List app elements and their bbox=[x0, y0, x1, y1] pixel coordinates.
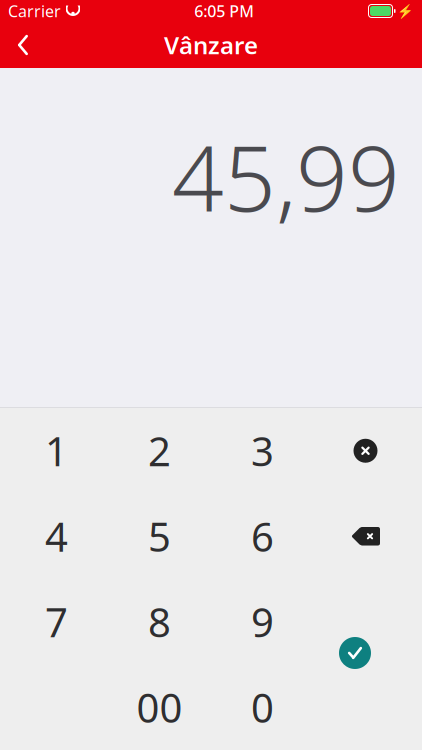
staticText: 00 bbox=[136, 681, 182, 734]
staticText: 8 bbox=[148, 595, 171, 648]
staticText: Vânzare bbox=[164, 29, 258, 61]
staticText: Carrier bbox=[8, 0, 61, 22]
button[interactable]: Back bbox=[0, 22, 46, 68]
staticText: 7 bbox=[45, 595, 68, 648]
staticText: 3 bbox=[251, 424, 274, 477]
button[interactable]: 9 bbox=[211, 579, 314, 664]
staticText: 1 bbox=[45, 424, 68, 477]
staticText: 6:05 PM bbox=[194, 0, 254, 22]
staticText: 45,99 bbox=[172, 116, 400, 236]
button[interactable]: 1 bbox=[5, 408, 108, 493]
staticText: 0 bbox=[251, 681, 274, 734]
button[interactable]: 0 bbox=[211, 664, 314, 750]
staticText: 2 bbox=[148, 424, 171, 477]
button[interactable]: Clear bbox=[314, 408, 417, 493]
button[interactable]: 6 bbox=[211, 493, 314, 579]
button[interactable]: 5 bbox=[108, 493, 211, 579]
button[interactable]: 2 bbox=[108, 408, 211, 493]
staticText: 5 bbox=[148, 510, 171, 563]
staticText: 6 bbox=[251, 510, 274, 563]
staticText: 4 bbox=[45, 510, 68, 563]
button[interactable]: Backspace bbox=[314, 493, 417, 579]
button[interactable]: Confirm bbox=[323, 621, 387, 685]
staticText: ⚡ bbox=[397, 3, 414, 19]
button[interactable]: 8 bbox=[108, 579, 211, 664]
button[interactable]: 4 bbox=[5, 493, 108, 579]
button[interactable]: 00 bbox=[108, 664, 211, 750]
staticText: 9 bbox=[251, 595, 274, 648]
button[interactable]: 7 bbox=[5, 579, 108, 664]
button[interactable]: 3 bbox=[211, 408, 314, 493]
